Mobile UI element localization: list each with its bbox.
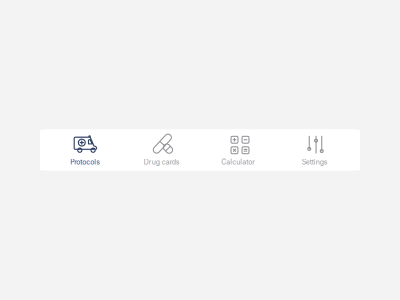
button[interactable]: Drug cards — [123, 129, 200, 170]
button[interactable]: Protocols — [47, 129, 123, 170]
staticText: Calculator — [221, 158, 255, 166]
button[interactable]: Settings — [276, 129, 353, 170]
button[interactable]: Calculator — [200, 129, 276, 170]
staticText: Settings — [302, 158, 328, 166]
staticText: Protocols — [70, 158, 100, 166]
staticText: Drug cards — [144, 158, 180, 166]
